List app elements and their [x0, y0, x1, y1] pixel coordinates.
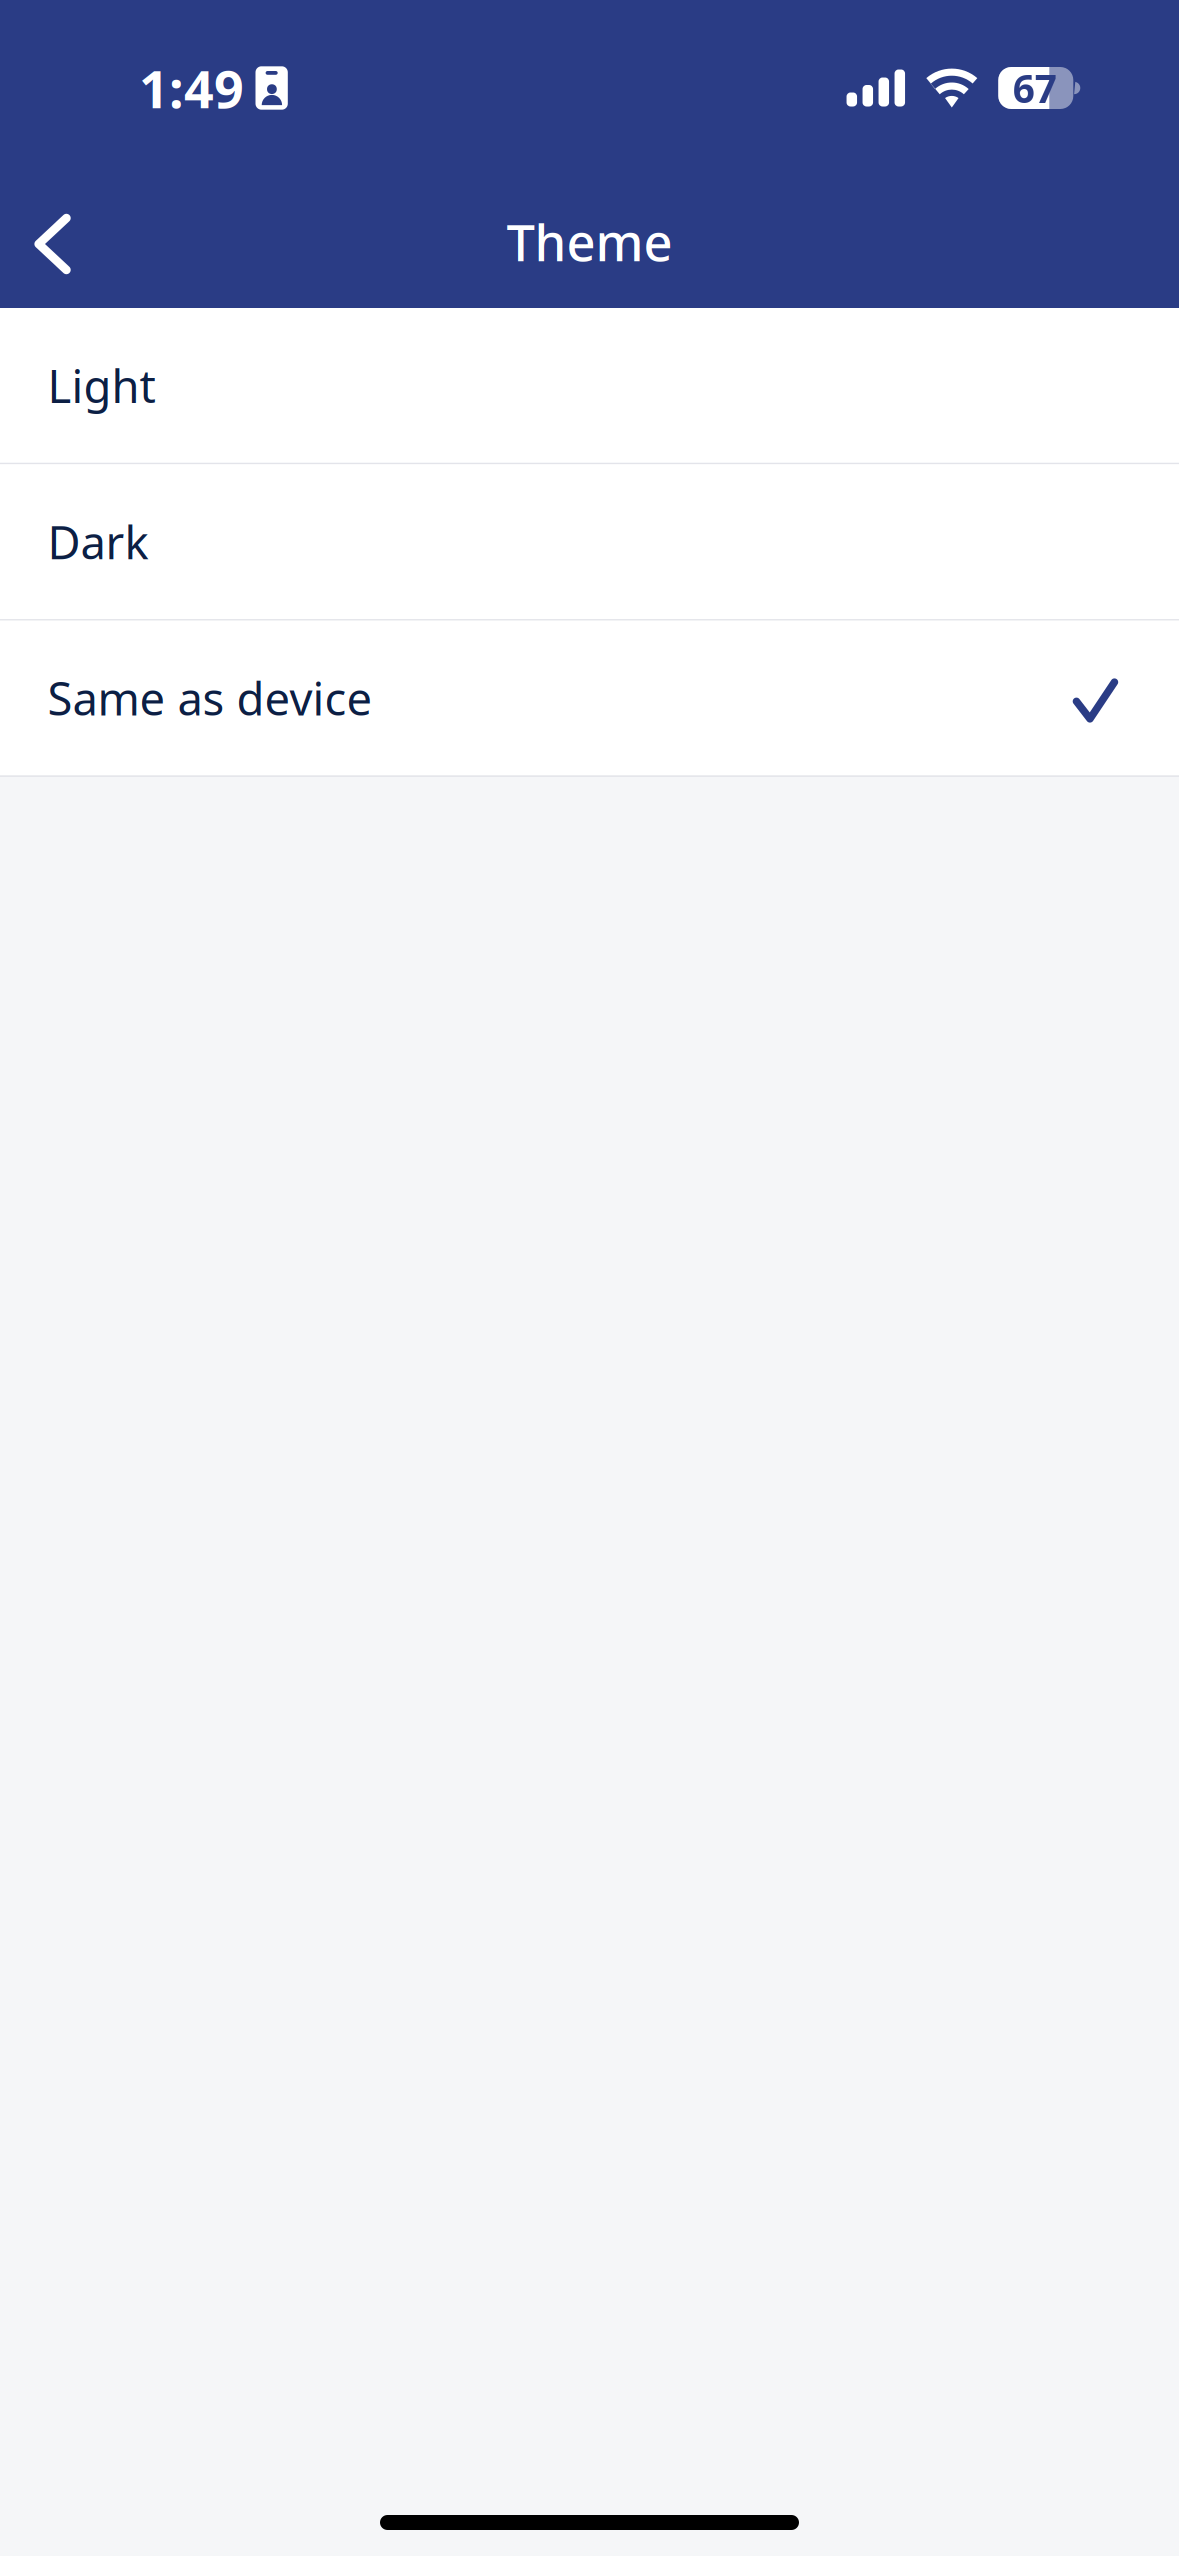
staticText: 1:49: [139, 53, 244, 123]
button[interactable]: Dark: [0, 464, 1179, 619]
button[interactable]: Light: [0, 308, 1179, 463]
button[interactable]: Back: [0, 170, 101, 308]
staticText: Light: [48, 355, 156, 415]
staticText: Dark: [48, 512, 149, 572]
staticText: Theme: [506, 208, 672, 275]
staticText: Same as device: [48, 668, 373, 728]
button[interactable]: Same as device: [0, 621, 1179, 775]
staticText: 67: [1013, 62, 1057, 114]
